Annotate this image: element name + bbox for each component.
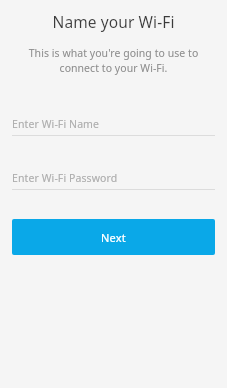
button[interactable]: Enter Wi-Fi Name bbox=[12, 116, 215, 136]
staticText: Next bbox=[101, 230, 126, 245]
staticText: Enter Wi-Fi Password bbox=[12, 171, 118, 185]
staticText: This is what you're going to use to conn… bbox=[18, 46, 209, 75]
staticText: Enter Wi-Fi Name bbox=[12, 117, 100, 131]
staticText: Name your Wi-Fi bbox=[12, 11, 215, 32]
button[interactable]: Enter Wi-Fi Password bbox=[12, 170, 215, 190]
button[interactable]: Next bbox=[12, 219, 215, 255]
